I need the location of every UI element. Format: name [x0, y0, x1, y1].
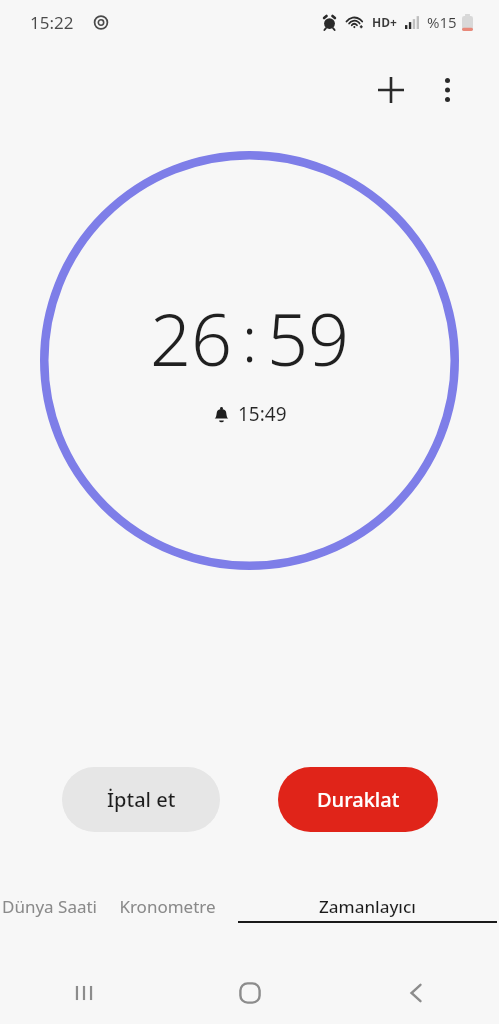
- staticText: 15:49: [238, 401, 287, 427]
- staticText: Kronometre: [119, 895, 216, 918]
- button[interactable]: Dünya Saati: [0, 893, 99, 920]
- button[interactable]: Duraklat: [278, 767, 438, 832]
- staticText: 26: [150, 289, 233, 387]
- staticText: 15:22: [30, 11, 74, 34]
- staticText: :: [242, 296, 258, 380]
- button[interactable]: Add timer: [363, 62, 419, 118]
- button[interactable]: Zamanlayıcı: [236, 893, 499, 925]
- button[interactable]: Kronometre: [117, 893, 218, 920]
- staticText: Zamanlayıcı: [319, 895, 416, 918]
- staticText: 59: [267, 289, 350, 387]
- staticText: Duraklat: [317, 786, 400, 813]
- button[interactable]: Back: [333, 962, 499, 1024]
- staticText: %15: [427, 12, 457, 32]
- button[interactable]: Recent apps: [0, 962, 167, 1024]
- button[interactable]: More options: [419, 62, 475, 118]
- button[interactable]: Home: [167, 962, 333, 1024]
- button[interactable]: İptal et: [62, 767, 220, 832]
- staticText: HD+: [372, 14, 397, 30]
- staticText: Dünya Saati: [2, 895, 97, 918]
- staticText: İptal et: [107, 786, 176, 813]
